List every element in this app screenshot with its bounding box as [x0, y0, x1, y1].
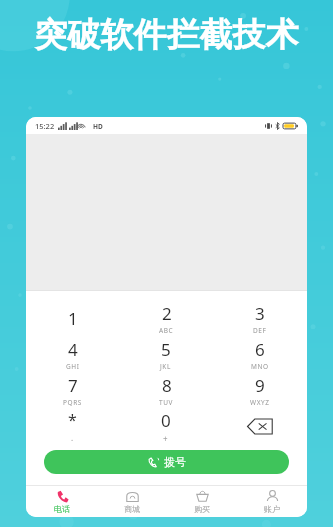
staticText: 2 — [162, 302, 172, 325]
staticText: 商城 — [124, 504, 140, 514]
button[interactable]: 5 — [119, 336, 213, 372]
staticText: GHI — [66, 362, 80, 371]
button[interactable]: 1 — [26, 300, 119, 336]
button[interactable]: 9 — [213, 372, 307, 408]
staticText: 4 — [68, 338, 78, 361]
button[interactable]: 购买 — [167, 486, 237, 517]
button[interactable]: 0 — [119, 408, 213, 444]
button[interactable]: 2 — [119, 300, 213, 336]
button[interactable]: 8 — [119, 372, 213, 408]
staticText: 7 — [68, 374, 78, 397]
staticText: ABC — [159, 326, 174, 335]
staticText: + — [163, 433, 169, 444]
button[interactable]: 7 — [26, 372, 119, 408]
staticText: 6 — [255, 338, 265, 361]
button[interactable]: 6 — [213, 336, 307, 372]
button[interactable]: 4 — [26, 336, 119, 372]
button[interactable]: 商城 — [97, 486, 167, 517]
staticText: 电话 — [54, 504, 70, 514]
button[interactable]: 3 — [213, 300, 307, 336]
staticText: 0 — [161, 409, 171, 432]
staticText: 9 — [255, 374, 265, 397]
staticText: HD — [93, 122, 103, 131]
staticText: DEF — [253, 326, 267, 335]
staticText: * — [68, 409, 77, 431]
staticText: PQRS — [63, 398, 83, 407]
button[interactable]: 电话 — [26, 486, 97, 517]
button[interactable]: 账户 — [237, 486, 307, 517]
button[interactable]: * — [26, 408, 119, 444]
staticText: 1 — [68, 307, 78, 330]
staticText: WXYZ — [250, 398, 270, 407]
button[interactable]: Backspace — [213, 408, 307, 444]
staticText: JKL — [160, 362, 172, 371]
staticText: TUV — [159, 398, 174, 407]
staticText: 账户 — [264, 504, 280, 514]
staticText: 拨号 — [164, 455, 186, 469]
staticText: 3 — [255, 302, 265, 325]
staticText: 5 — [161, 338, 171, 361]
staticText: 8 — [162, 374, 172, 397]
staticText: 购买 — [194, 504, 210, 514]
staticText: MNO — [251, 362, 269, 371]
staticText: 突破软件拦截技术 — [0, 14, 333, 56]
button[interactable]: 拨号 — [44, 450, 289, 474]
staticText: . — [71, 432, 74, 443]
staticText: 15:22 — [35, 121, 55, 131]
